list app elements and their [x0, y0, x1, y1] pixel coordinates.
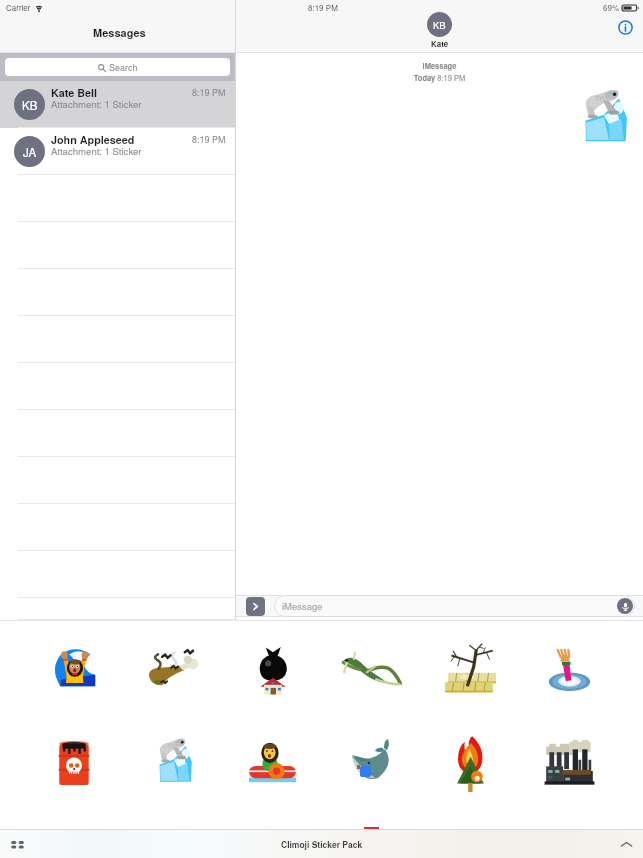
staticText: KB [22, 97, 38, 113]
button[interactable]: JA [0, 128, 235, 175]
staticText: 8:19 PM [192, 133, 226, 146]
staticText: Today 8:19 PM [236, 72, 643, 83]
button[interactable]: Polar bear [124, 716, 223, 810]
staticText: Messages [93, 25, 146, 41]
button[interactable]: Expand [615, 833, 637, 855]
staticText: 8:19 PM [192, 86, 226, 99]
button[interactable]: Factory [520, 716, 619, 810]
staticText: iMessage [236, 61, 643, 72]
button[interactable]: Whale [322, 716, 421, 810]
staticText: KB [433, 18, 446, 32]
button[interactable]: Search [5, 58, 230, 76]
button[interactable]: Sticker packs [6, 833, 28, 855]
button[interactable]: Life raft [223, 716, 322, 810]
staticText: iMessage [282, 599, 323, 613]
button[interactable]: Drowning [520, 622, 619, 716]
staticText: JA [23, 144, 37, 160]
other: Dictate [617, 598, 633, 614]
staticText: Kate [431, 38, 449, 49]
button[interactable]: Flood [24, 622, 124, 716]
button[interactable]: Wildfire [421, 716, 520, 810]
button[interactable]: Rotten meat [124, 622, 223, 716]
staticText: 69% [603, 2, 620, 13]
staticText: Attachment: 1 Sticker [51, 144, 142, 158]
button[interactable]: Toxic waste [24, 716, 124, 810]
button[interactable]: Drought [421, 622, 520, 716]
button[interactable]: KB [427, 12, 452, 37]
staticText: Attachment: 1 Sticker [51, 97, 142, 111]
staticText: 8:19 PM [308, 2, 338, 13]
staticText: John Appleseed [51, 132, 135, 147]
staticText: Carrier [6, 2, 31, 13]
button[interactable]: KB [0, 81, 235, 128]
button[interactable]: Lizard [322, 622, 421, 716]
staticText: Kate Bell [51, 85, 98, 100]
button[interactable]: Details [612, 14, 638, 40]
staticText: Search [109, 61, 138, 74]
button[interactable]: Apps [246, 597, 265, 616]
staticText: Climoji Sticker Pack [281, 838, 363, 850]
button[interactable]: Waste [223, 622, 322, 716]
button[interactable]: iMessage [274, 595, 635, 617]
